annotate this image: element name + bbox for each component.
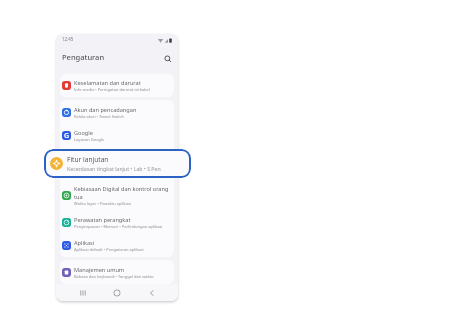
staticText: Manajemen umum [74,266,125,274]
staticText: Kebiasaan Digital dan kontrol orang [74,185,169,193]
staticText: Keselamatan dan darurat [74,79,141,87]
button[interactable]: Manajemen umum [60,260,174,284]
staticText: Aplikasi default • Pengaturan aplikasi [74,247,144,252]
staticText: Aplikasi [74,239,95,247]
button[interactable]: Recents [75,285,91,301]
staticText: Fitur lanjutan [74,157,110,165]
button[interactable]: Perawatan perangkat [60,211,174,234]
button[interactable]: Akun dan pencadangan [60,100,174,124]
staticText: Kecerdasan tingkat lanjut • Lab • S Pen [74,165,147,170]
staticText: Waktu layar • Pewaktu aplikasi [74,201,131,206]
staticText: G [64,131,70,140]
staticText: Kecerdasan tingkat lanjut • Lab • S Pen [67,165,161,172]
staticText: Akun dan pencadangan [74,106,137,114]
button[interactable]: Kebiasaan Digital dan kontrol orang [60,180,174,211]
button[interactable]: Search [162,53,173,64]
button[interactable]: Keselamatan dan darurat [60,74,174,97]
staticText: Penyimpanan • Memori • Perlindungan apli… [74,224,163,229]
staticText: Fitur lanjutan [67,155,109,164]
button[interactable]: Home [109,285,125,301]
button[interactable]: Aplikasi [60,234,174,257]
button[interactable]: Back [144,285,160,301]
button[interactable]: Fitur lanjutan [60,147,174,180]
staticText: Google [74,129,93,137]
staticText: Pengaturan [62,52,105,62]
button[interactable]: G [60,124,174,147]
staticText: Kelola akun • Smart Switch [74,114,124,119]
button[interactable]: Fitur lanjutan [44,149,191,178]
staticText: Info medis • Peringatan darurat nirkabel [74,87,150,92]
staticText: Layanan Google [74,137,105,142]
staticText: Bahasa dan keyboard • Tanggal dan waktu [74,274,154,279]
staticText: Perawatan perangkat [74,216,131,224]
staticText: 12:45 [62,36,74,42]
staticText: tua [74,193,83,201]
